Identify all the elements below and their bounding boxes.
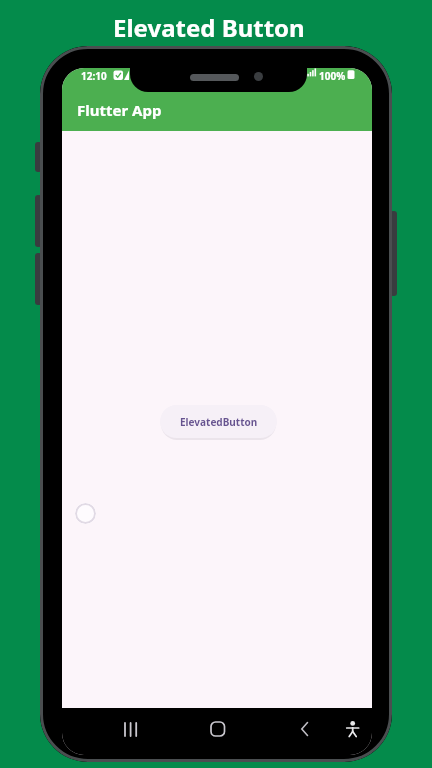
button[interactable] (116, 714, 152, 750)
staticText: Elevated Button (113, 11, 305, 44)
button[interactable] (335, 714, 371, 750)
button[interactable]: ElevatedButton (160, 405, 277, 438)
button[interactable] (284, 714, 320, 750)
button[interactable] (200, 714, 236, 750)
staticText: Flutter App (77, 100, 162, 120)
staticText: ElevatedButton (180, 415, 258, 429)
staticText: 100% (319, 69, 346, 83)
staticText: 12:10 (81, 69, 107, 83)
